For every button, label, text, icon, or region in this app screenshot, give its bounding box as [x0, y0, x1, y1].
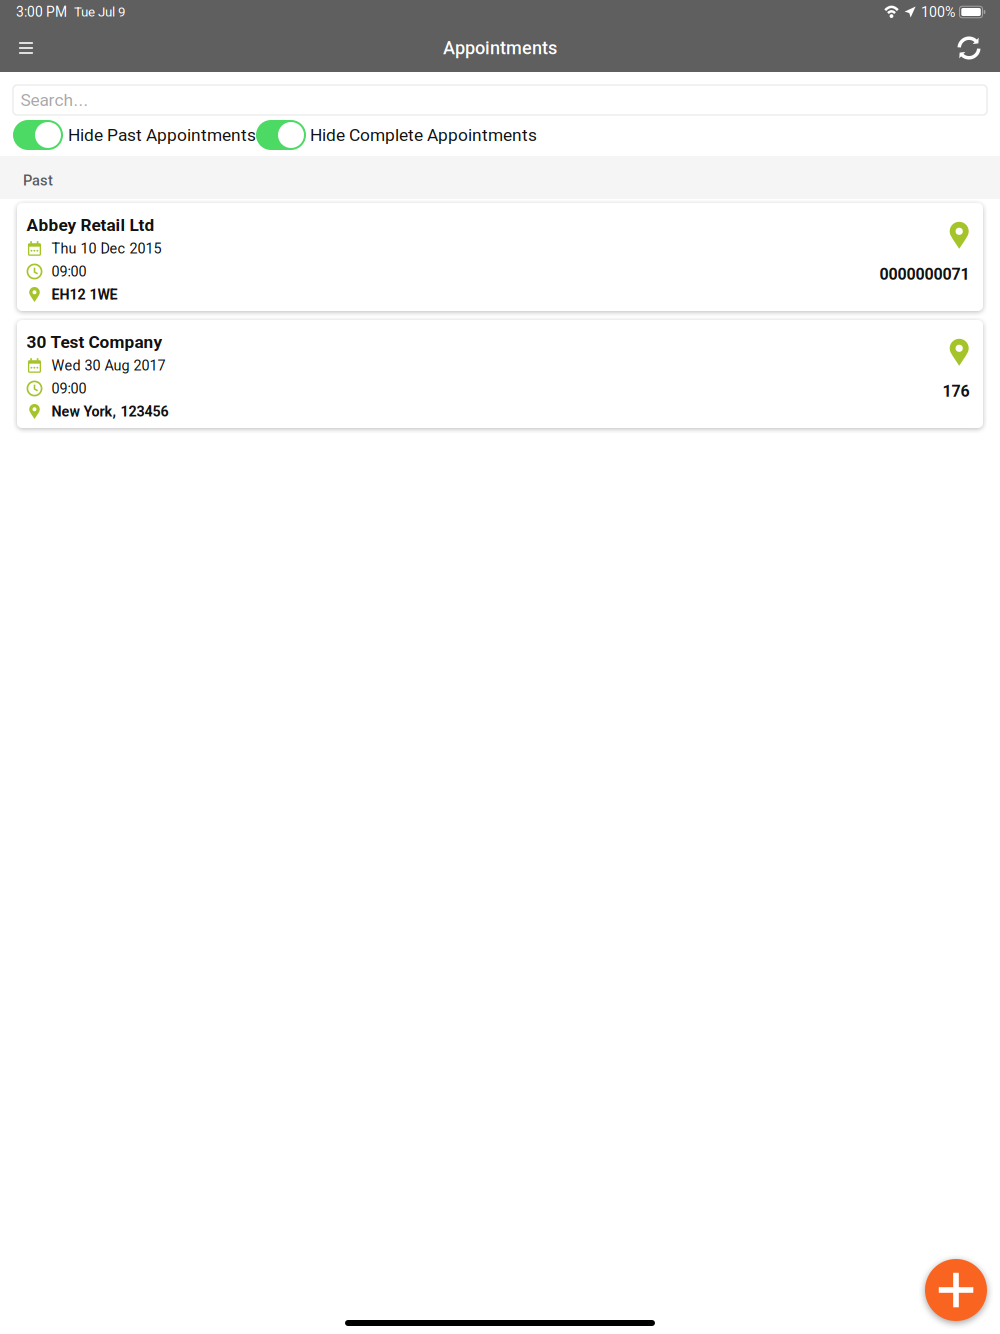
staticText: 09:00 [51, 263, 86, 280]
button[interactable]: Hide Past Appointments [13, 120, 256, 150]
button[interactable]: Menu [3, 24, 49, 72]
staticText: 3:00 PM [16, 4, 67, 20]
button[interactable]: Hide Complete Appointments [256, 120, 537, 150]
staticText: 100% [921, 4, 955, 20]
staticText: Abbey Retail Ltd [26, 215, 154, 235]
staticText: Hide Past Appointments [68, 125, 256, 145]
staticText: New York, 123456 [51, 403, 168, 420]
staticText: Wed 30 Aug 2017 [51, 357, 165, 374]
button[interactable]: Refresh [946, 24, 992, 72]
button[interactable]: Search... [13, 85, 987, 115]
button[interactable]: 30 Test Company [17, 320, 983, 428]
button[interactable]: Abbey Retail Ltd [17, 203, 983, 311]
staticText: Past [23, 172, 53, 189]
staticText: 0000000071 [879, 265, 969, 284]
button[interactable]: Add appointment [925, 1259, 987, 1321]
staticText: Search... [20, 90, 88, 110]
staticText: EH12 1WE [51, 286, 117, 303]
staticText: Tue Jul 9 [74, 4, 125, 20]
staticText: Appointments [443, 37, 557, 59]
staticText: Hide Complete Appointments [310, 125, 537, 145]
staticText: 09:00 [51, 380, 86, 397]
staticText: Thu 10 Dec 2015 [51, 240, 161, 257]
staticText: 176 [942, 382, 969, 401]
staticText: 30 Test Company [26, 332, 162, 352]
